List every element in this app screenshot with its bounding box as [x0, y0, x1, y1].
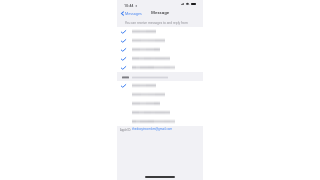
button[interactable]: Selected address — [117, 45, 203, 54]
button[interactable]: Address — [117, 117, 203, 126]
button[interactable]: Apple ID: — [120, 127, 173, 131]
button[interactable]: Selected address — [117, 36, 203, 45]
button[interactable]: Address — [117, 90, 203, 99]
button[interactable]: Address — [117, 108, 203, 117]
button[interactable]: Selected address — [117, 81, 203, 90]
staticText: You can receive messages to and reply fr… — [125, 21, 188, 25]
staticText: thedoxytrocmbm@gmail.com — [132, 127, 173, 131]
button[interactable]: Back to Messages — [121, 11, 142, 16]
staticText: Apple ID: — [120, 128, 131, 131]
staticText: Message — [151, 10, 170, 16]
button[interactable]: Selected address — [117, 27, 203, 36]
staticText: 10:44 — [124, 3, 134, 8]
staticText: Messages — [125, 11, 142, 16]
button[interactable]: Selected address — [117, 54, 203, 63]
button[interactable]: Address — [117, 99, 203, 108]
button[interactable]: Selected address — [117, 63, 203, 72]
